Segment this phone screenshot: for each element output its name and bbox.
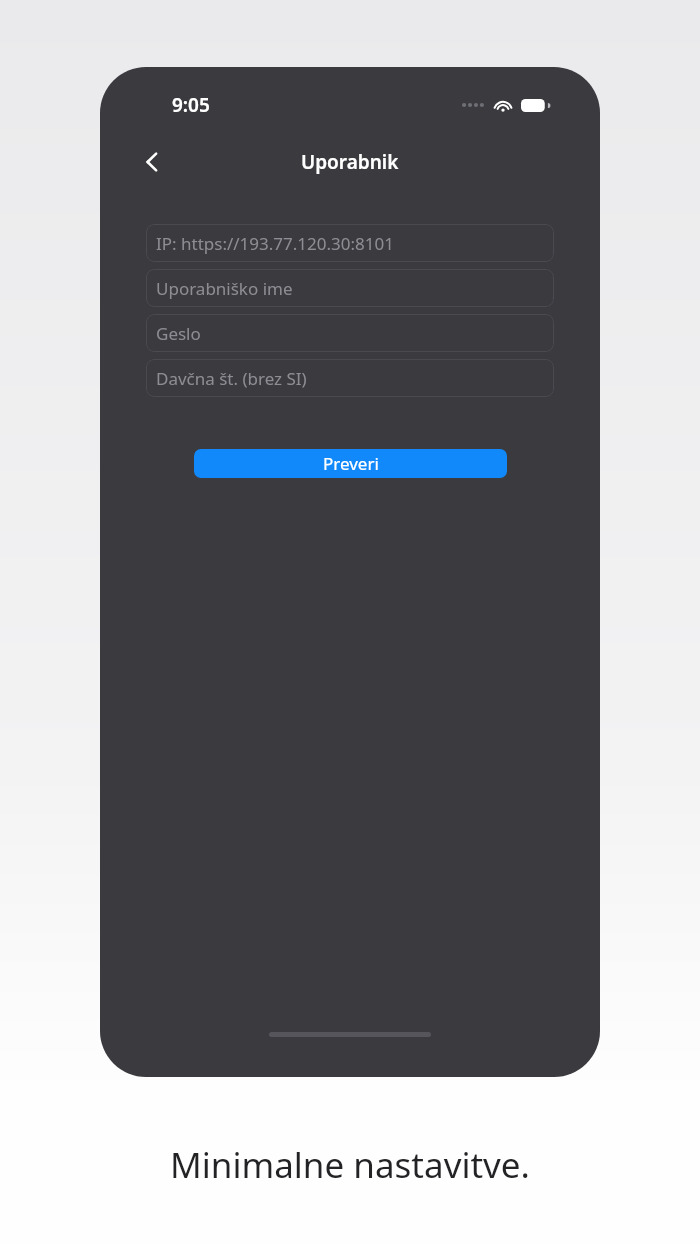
staticText: 9:05: [172, 92, 210, 118]
staticText: Geslo: [156, 322, 201, 345]
staticText: Davčna št. (brez SI): [156, 367, 307, 390]
staticText: Minimalne nastavitve.: [170, 1141, 530, 1189]
staticText: Uporabniško ime: [156, 277, 293, 300]
button[interactable]: Back: [130, 140, 174, 184]
button[interactable]: IP: https://193.77.120.30:8101: [146, 224, 554, 262]
staticText: IP: https://193.77.120.30:8101: [156, 232, 394, 255]
staticText: Uporabnik: [301, 149, 399, 175]
button[interactable]: Davčna št. (brez SI): [146, 359, 554, 397]
button[interactable]: Uporabniško ime: [146, 269, 554, 307]
button[interactable]: Geslo: [146, 314, 554, 352]
button[interactable]: Preveri: [194, 449, 507, 478]
staticText: Preveri: [323, 452, 379, 475]
